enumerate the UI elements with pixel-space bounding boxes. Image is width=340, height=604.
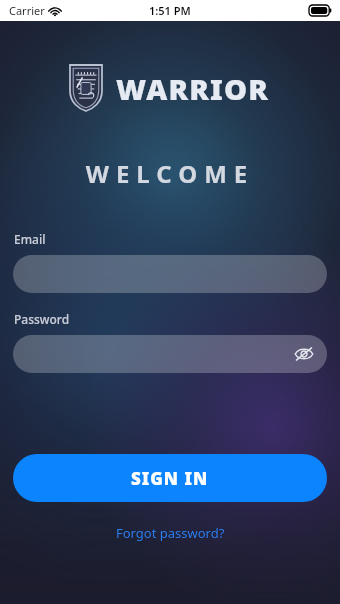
staticText: SIGN IN	[131, 467, 209, 490]
staticText: Carrier	[9, 3, 45, 18]
staticText: WARRIOR	[116, 69, 270, 108]
button[interactable]	[13, 255, 327, 293]
button[interactable]: Show password	[13, 335, 327, 373]
staticText: Email	[14, 231, 46, 247]
button[interactable]: Show password	[293, 343, 315, 365]
staticText: 1:51 PM	[149, 3, 191, 18]
button[interactable]: SIGN IN	[13, 454, 327, 502]
button[interactable]: Forgot password?	[108, 520, 233, 546]
staticText: WELCOME	[0, 157, 340, 190]
staticText: Forgot password?	[116, 524, 225, 542]
staticText: Password	[14, 311, 70, 327]
